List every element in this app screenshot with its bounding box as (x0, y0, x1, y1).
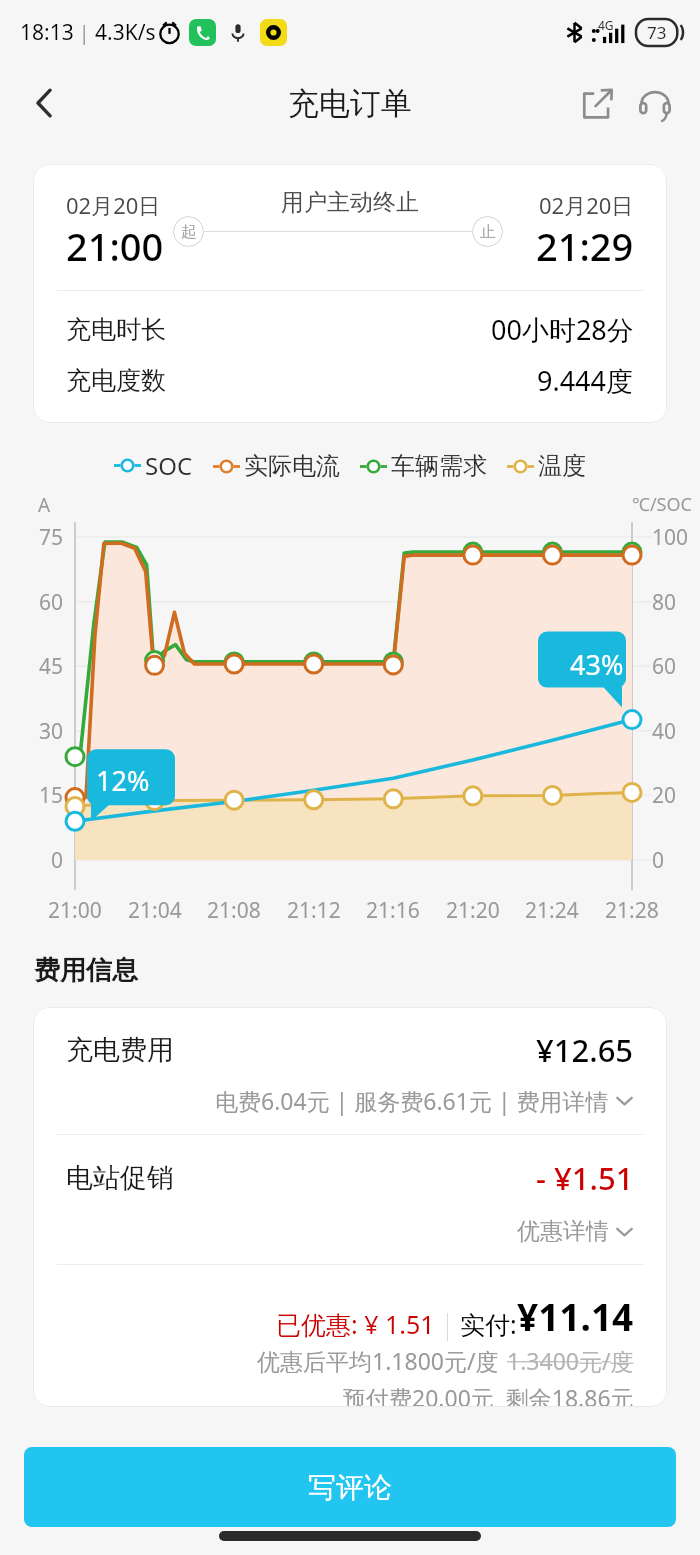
staticText: 0 (652, 846, 665, 875)
staticText: 4G (598, 17, 614, 33)
button[interactable]: 返回 (14, 72, 76, 134)
staticText: 电费6.04元 | 服务费6.61元 | 费用详情 (215, 1085, 609, 1116)
staticText: 已优惠: ¥ 1.51 (276, 1307, 435, 1341)
staticText: 02月20日 (66, 190, 161, 220)
staticText: 100 (652, 523, 689, 552)
staticText: 实付: (460, 1307, 517, 1341)
staticText: ℃/SOC (632, 492, 692, 517)
staticText: ¥11.14 (517, 1291, 634, 1341)
staticText: 73 (647, 21, 667, 44)
staticText: 12% (96, 762, 150, 799)
staticText: 充电时长 (66, 314, 166, 345)
staticText: 充电度数 (66, 365, 166, 396)
staticText: ¥12.65 (536, 1029, 634, 1071)
staticText: 4.3K/s (95, 18, 156, 47)
staticText: 充电订单 (288, 84, 412, 123)
staticText: 实际电流 (244, 451, 340, 481)
staticText: 费用信息 (34, 954, 138, 987)
staticText: 18:13 (20, 18, 74, 47)
staticText: 40 (652, 717, 677, 746)
button[interactable]: 分享 (568, 74, 626, 132)
staticText: 21:04 (128, 896, 182, 925)
staticText: 1.3400元/度 (507, 1345, 634, 1376)
staticText: 温度 (538, 451, 586, 481)
staticText: 15 (39, 781, 64, 810)
staticText: 9.444度 (537, 362, 634, 399)
staticText: 75 (39, 523, 64, 552)
staticText: 写评论 (308, 1470, 392, 1505)
staticText: 21:00 (66, 220, 164, 272)
staticText: 预付费20.00元 剩余18.86元 (343, 1382, 634, 1407)
staticText: 优惠后平均1.1800元/度 (257, 1345, 499, 1376)
staticText: 21:20 (446, 896, 500, 925)
staticText: 0 (51, 846, 64, 875)
staticText: 21:00 (48, 896, 102, 925)
staticText: | (74, 20, 95, 46)
staticText: 20 (652, 781, 677, 810)
staticText: 优惠详情 (517, 1217, 609, 1246)
staticText: 45 (39, 652, 64, 681)
staticText: 21:08 (207, 896, 261, 925)
staticText: 21:29 (536, 220, 634, 272)
staticText: 60 (652, 652, 677, 681)
staticText: 60 (39, 588, 64, 617)
staticText: 21:16 (366, 896, 420, 925)
staticText: 00小时28分 (491, 311, 634, 348)
staticText: 21:28 (605, 896, 659, 925)
staticText: 21:24 (525, 896, 579, 925)
staticText: 02月20日 (539, 190, 634, 220)
staticText: - ¥1.51 (536, 1157, 634, 1199)
staticText: 起 (181, 222, 197, 242)
button[interactable]: 写评论 (24, 1447, 676, 1527)
staticText: 43% (570, 646, 624, 683)
staticText: 30 (39, 717, 64, 746)
staticText: 用户主动终止 (281, 188, 419, 217)
staticText: 80 (652, 588, 677, 617)
button[interactable]: 电费6.04元 | 服务费6.61元 | 费用详情 (33, 1085, 667, 1116)
staticText: 充电费用 (66, 1033, 174, 1067)
staticText: 止 (480, 222, 496, 242)
button[interactable]: 客服 (626, 74, 684, 132)
staticText: 电站促销 (66, 1161, 174, 1195)
staticText: 21:12 (287, 896, 341, 925)
staticText: SOC (145, 449, 193, 482)
staticText: A (38, 492, 51, 518)
button[interactable]: 优惠详情 (33, 1217, 667, 1246)
staticText: 车辆需求 (391, 451, 487, 481)
